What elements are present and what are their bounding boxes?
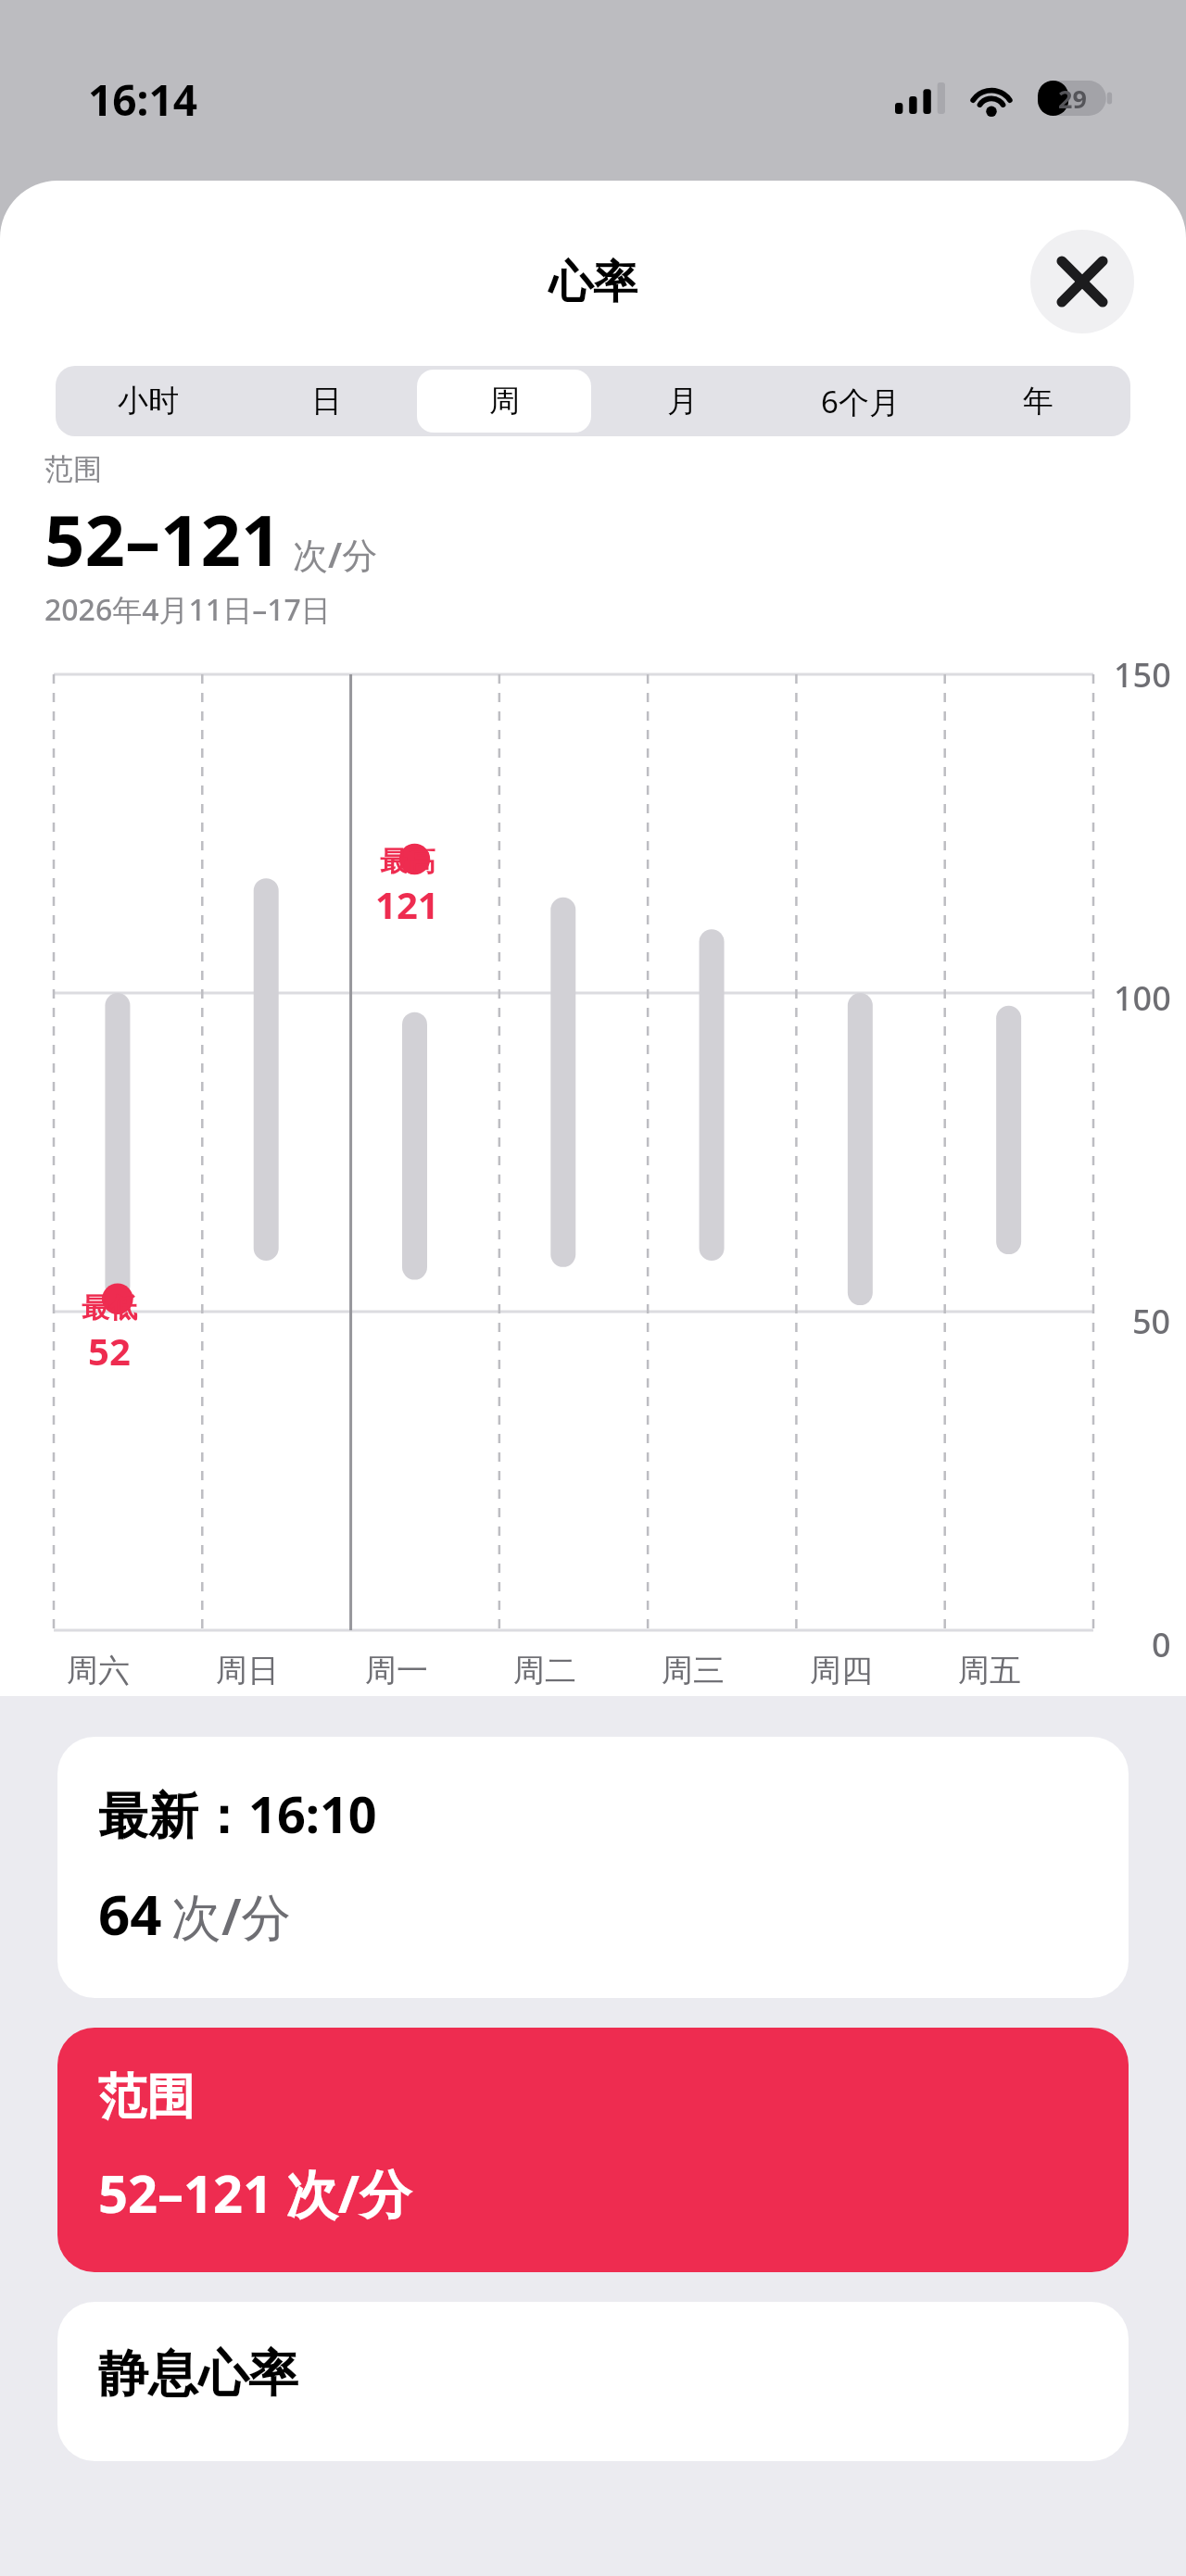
staticText: 周五 (958, 1651, 1021, 1690)
staticText: 范围 (98, 2067, 195, 2128)
staticText: 0 (1152, 1622, 1171, 1667)
staticText: 心率 (549, 255, 637, 310)
staticText: 6个月 (821, 381, 900, 422)
button[interactable]: 范围 (57, 2028, 1129, 2272)
button[interactable]: 周 (417, 370, 591, 433)
staticText: 周四 (810, 1651, 873, 1690)
staticText: 121 (375, 879, 439, 929)
staticText: 静息心率 (98, 2343, 298, 2406)
staticText: 年 (1023, 382, 1054, 421)
button[interactable]: 关闭 (1030, 230, 1134, 333)
button[interactable]: 小时 (61, 370, 235, 433)
staticText: 周日 (216, 1651, 279, 1690)
staticText: 周 (489, 382, 520, 421)
button[interactable]: 日 (239, 370, 413, 433)
staticText: 100 (1114, 975, 1171, 1021)
staticText: 52–121 (44, 491, 282, 587)
staticText: 52 (88, 1326, 131, 1376)
button[interactable]: 年 (951, 370, 1125, 433)
staticText: 周三 (662, 1651, 725, 1690)
staticText: 日 (311, 382, 342, 421)
staticText: 周二 (513, 1651, 576, 1690)
button[interactable]: 6个月 (773, 370, 947, 433)
staticText: 2026年4月11日–17日 (44, 589, 331, 630)
staticText: 周六 (67, 1651, 130, 1690)
staticText: 最高 (380, 844, 435, 879)
staticText: 64 (98, 1876, 162, 1952)
staticText: 最新：16:10 (98, 1779, 377, 1848)
staticText: 月 (667, 382, 698, 421)
button[interactable]: 月 (595, 370, 769, 433)
staticText: 周一 (365, 1651, 428, 1690)
button[interactable]: 静息心率 (57, 2302, 1129, 2461)
staticText: 次/分 (293, 530, 378, 578)
staticText: 29 (1058, 82, 1087, 116)
staticText: 150 (1114, 652, 1171, 697)
staticText: 次/分 (171, 1881, 292, 1950)
staticText: 范围 (44, 451, 102, 487)
staticText: 小时 (118, 382, 179, 421)
staticText: 52–121 次/分 (98, 2157, 411, 2228)
button[interactable]: 最新：16:10 (57, 1737, 1129, 1998)
staticText: 50 (1132, 1299, 1171, 1344)
staticText: 16:14 (88, 70, 198, 129)
staticText: 最低 (82, 1290, 137, 1326)
